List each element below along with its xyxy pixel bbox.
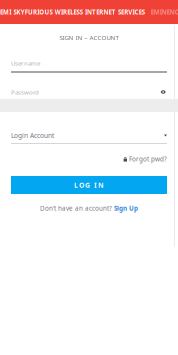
staticText: Login Account: [11, 131, 54, 140]
staticText: Username: [11, 59, 40, 67]
staticText: EMINENCE: [151, 8, 178, 16]
button[interactable]: LOG IN: [11, 176, 167, 194]
button[interactable]: Sign Up: [114, 204, 138, 212]
staticText: Sign Up: [114, 204, 138, 212]
staticText: SIGN IN – ACCOUNT: [59, 33, 118, 42]
button[interactable]: Forgot pwd?: [124, 155, 167, 163]
button[interactable]: Show password: [159, 89, 167, 95]
staticText: Password: [11, 88, 39, 96]
staticText: Forgot pwd?: [129, 155, 167, 163]
staticText: LOG IN: [74, 180, 104, 190]
staticText: Don't have an account?: [40, 204, 112, 212]
button[interactable]: Login Account: [0, 132, 178, 144]
staticText: EMI SKYFURIOUS WIRELESS INTERNET SERVICE…: [0, 8, 145, 16]
